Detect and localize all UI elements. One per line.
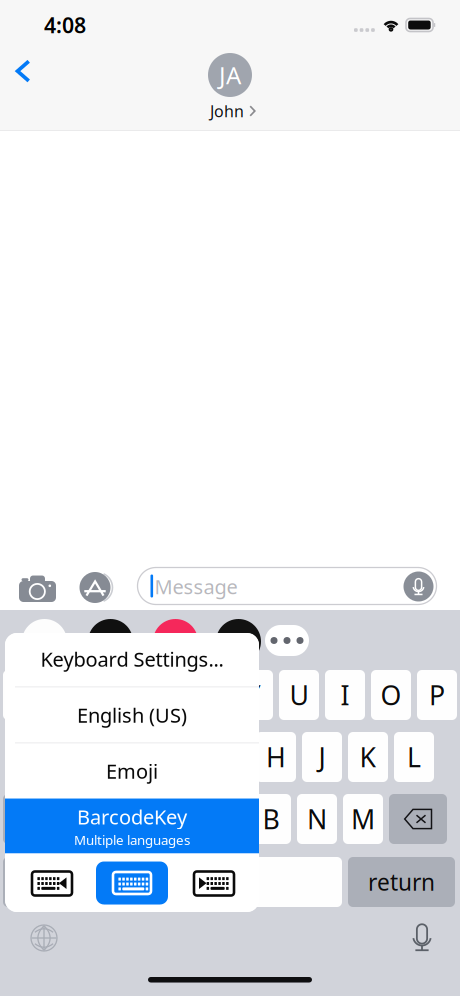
button[interactable]: return (348, 857, 455, 907)
button[interactable]: D (118, 732, 158, 782)
button[interactable]: V (205, 794, 245, 844)
button[interactable]: B (251, 794, 291, 844)
button[interactable]: H (256, 732, 296, 782)
button[interactable]: L (394, 732, 434, 782)
staticText: R (152, 677, 169, 713)
button[interactable]: Emoji (5, 743, 259, 798)
button[interactable]: Back (0, 49, 46, 93)
staticText: I (340, 677, 349, 713)
button[interactable]: T (187, 670, 227, 720)
staticText: Message (154, 573, 237, 600)
button[interactable]: J (302, 732, 342, 782)
staticText: John (210, 100, 244, 122)
button[interactable]: Keyboard Settings... (5, 631, 259, 686)
button[interactable]: W (49, 670, 89, 720)
button[interactable]: C (159, 794, 199, 844)
staticText: O (380, 677, 401, 713)
button[interactable]: Y (233, 670, 273, 720)
button[interactable]: Camera (19, 561, 66, 606)
button[interactable]: Switch keyboard (22, 916, 66, 960)
staticText: P (429, 677, 445, 713)
staticText: K (359, 739, 376, 775)
staticText: BarcodeKey (77, 803, 187, 830)
staticText: space (199, 868, 256, 896)
button[interactable]: P (417, 670, 457, 720)
staticText: L (407, 739, 421, 775)
staticText: C (170, 801, 187, 837)
button[interactable]: Current keyboard (96, 861, 168, 904)
staticText: E (107, 677, 122, 713)
button[interactable]: 123 (3, 857, 61, 907)
button[interactable]: Previous keyboard (19, 861, 85, 905)
staticText: Y (245, 677, 260, 713)
staticText: 123 (15, 869, 48, 895)
staticText: English (US) (77, 702, 187, 728)
button[interactable]: Delete (389, 794, 447, 844)
button[interactable]: Z (67, 794, 107, 844)
staticText: J (318, 739, 325, 775)
staticText: Keyboard Settings... (40, 646, 223, 672)
button[interactable]: App Store (77, 561, 121, 606)
button[interactable]: X (113, 794, 153, 844)
button[interactable]: space (113, 857, 342, 907)
staticText: Emoji (106, 758, 158, 784)
button[interactable]: N (297, 794, 337, 844)
button[interactable]: Next keyboard (181, 861, 247, 905)
button[interactable]: K (348, 732, 388, 782)
button[interactable]: Next keyboard (67, 857, 107, 907)
button[interactable]: BarcodeKey (5, 798, 259, 853)
button[interactable]: M (343, 794, 383, 844)
button[interactable]: I (325, 670, 365, 720)
button[interactable]: Q (3, 670, 43, 720)
staticText: Multiple languages (74, 831, 190, 849)
button[interactable]: English (US) (5, 687, 259, 742)
staticText: return (368, 867, 435, 897)
button[interactable]: More apps (265, 625, 309, 656)
staticText: 4:08 (44, 11, 86, 39)
button[interactable]: Dictate (400, 916, 444, 960)
button[interactable]: R (141, 670, 181, 720)
button[interactable]: O (371, 670, 411, 720)
staticText: M (351, 801, 375, 837)
button[interactable]: S (72, 732, 112, 782)
staticText: U (289, 677, 308, 713)
staticText: JA (219, 59, 241, 91)
staticText: Z (79, 801, 94, 837)
staticText: D (128, 739, 147, 775)
button[interactable]: Shift (3, 794, 61, 844)
staticText: B (262, 801, 279, 837)
staticText: W (56, 677, 81, 713)
staticText: H (266, 739, 286, 775)
staticText: X (125, 801, 141, 837)
staticText: N (307, 801, 327, 837)
button[interactable]: E (95, 670, 135, 720)
button[interactable]: U (279, 670, 319, 720)
button[interactable]: Record audio (403, 571, 433, 601)
button[interactable]: JA (174, 46, 286, 120)
